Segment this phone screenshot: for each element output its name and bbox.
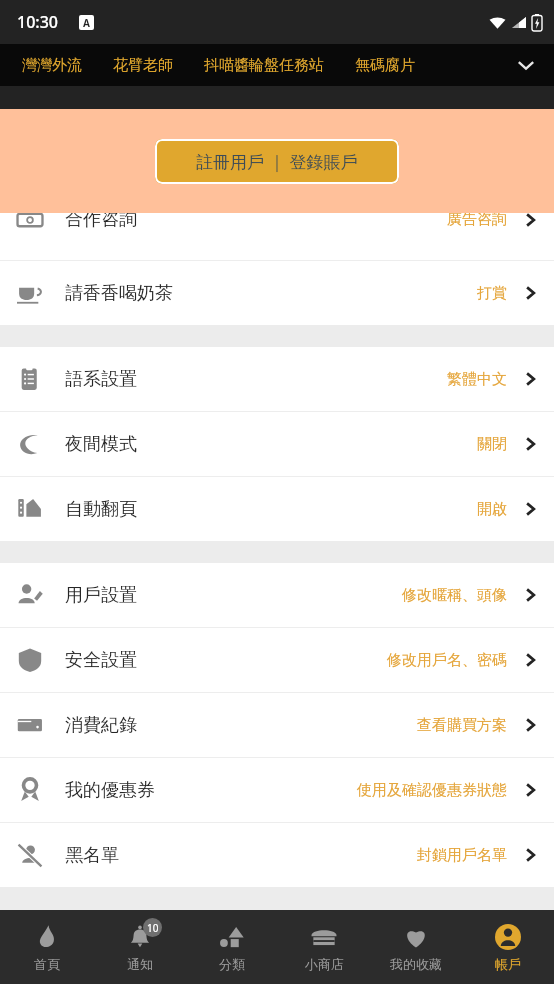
staticText: 開啟 <box>477 500 507 519</box>
staticText: 帳戶 <box>495 956 521 972</box>
button[interactable]: 10 <box>93 910 186 984</box>
button[interactable]: 分類 <box>186 910 278 984</box>
staticText: 合作咨詢 <box>65 213 137 231</box>
button[interactable]: 請香香喝奶茶 <box>0 261 554 325</box>
staticText: A <box>83 16 90 30</box>
staticText: 夜間模式 <box>65 433 137 456</box>
button[interactable]: 小商店 <box>278 910 370 984</box>
staticText: 10 <box>147 921 159 935</box>
button[interactable]: 夜間模式 <box>0 412 554 476</box>
staticText: 消費紀錄 <box>65 714 137 737</box>
button[interactable]: 灣灣外流 <box>22 49 82 82</box>
button[interactable]: 抖喵醬輪盤任務站 <box>204 49 324 82</box>
button[interactable]: 註冊用戶 ｜ 登錄賬戶 <box>155 139 399 184</box>
staticText: 分類 <box>219 956 245 972</box>
button[interactable]: 帳戶 <box>462 910 554 984</box>
button[interactable]: Expand categories <box>504 44 548 86</box>
staticText: 花臂老師 <box>113 56 173 75</box>
staticText: 我的收藏 <box>390 956 442 972</box>
button[interactable]: 我的收藏 <box>370 910 462 984</box>
staticText: 自動翻頁 <box>65 498 137 521</box>
staticText: 小商店 <box>305 956 344 972</box>
staticText: 打賞 <box>477 284 507 303</box>
staticText: 查看購買方案 <box>417 716 507 735</box>
staticText: 請香香喝奶茶 <box>65 282 173 305</box>
staticText: 灣灣外流 <box>22 56 82 75</box>
staticText: 修改用戶名、密碼 <box>387 651 507 670</box>
button[interactable]: 合作咨詢 <box>0 213 554 243</box>
button[interactable]: 我的優惠券 <box>0 758 554 822</box>
staticText: 用戶設置 <box>65 584 137 607</box>
staticText: 語系設置 <box>65 368 137 391</box>
staticText: 無碼腐片 <box>355 56 415 75</box>
staticText: 首頁 <box>34 956 60 972</box>
staticText: 廣告咨詢 <box>447 213 507 229</box>
staticText: 封鎖用戶名單 <box>417 846 507 865</box>
button[interactable]: 無碼腐片 <box>355 49 415 82</box>
staticText: 關閉 <box>477 435 507 454</box>
staticText: 我的優惠券 <box>65 779 155 802</box>
staticText: 通知 <box>127 956 153 972</box>
button[interactable]: 安全設置 <box>0 628 554 692</box>
button[interactable]: 語系設置 <box>0 347 554 411</box>
button[interactable]: 首頁 <box>0 910 93 984</box>
button[interactable]: 消費紀錄 <box>0 693 554 757</box>
staticText: 黑名單 <box>65 844 119 867</box>
staticText: 10:30 <box>17 11 58 33</box>
button[interactable]: 自動翻頁 <box>0 477 554 541</box>
staticText: 註冊用戶 ｜ 登錄賬戶 <box>196 150 358 173</box>
staticText: 使用及確認優惠券狀態 <box>357 781 507 800</box>
button[interactable]: 用戶設置 <box>0 563 554 627</box>
staticText: 繁體中文 <box>447 370 507 389</box>
button[interactable]: 花臂老師 <box>113 49 173 82</box>
staticText: 安全設置 <box>65 649 137 672</box>
staticText: 抖喵醬輪盤任務站 <box>204 56 324 75</box>
button[interactable]: 黑名單 <box>0 823 554 887</box>
staticText: 修改暱稱、頭像 <box>402 586 507 605</box>
